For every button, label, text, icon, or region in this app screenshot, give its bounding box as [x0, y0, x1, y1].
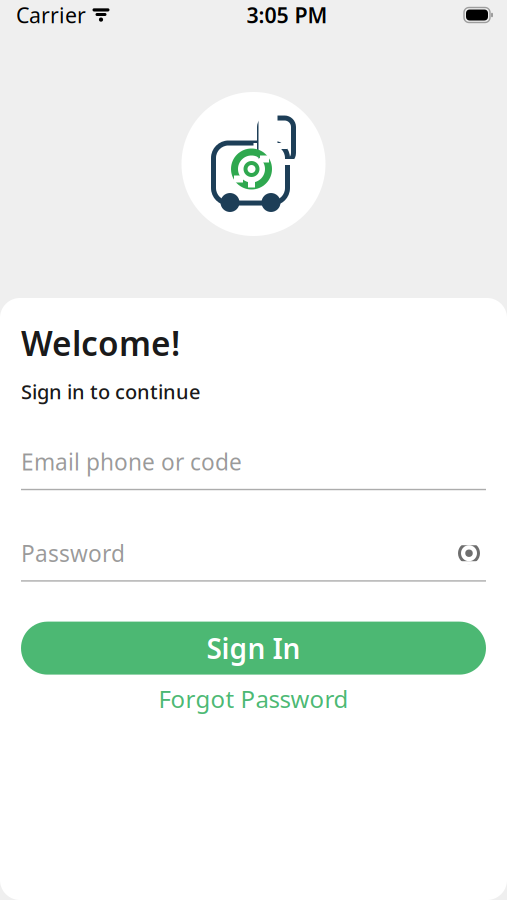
staticText: Welcome! — [21, 321, 180, 365]
staticText: Carrier — [16, 1, 86, 29]
staticText: Password — [21, 538, 125, 568]
staticText: Sign In — [206, 629, 300, 667]
button[interactable]: Show password — [452, 540, 486, 566]
button[interactable]: Sign In — [21, 622, 486, 675]
staticText: 3:05 PM — [246, 1, 327, 29]
staticText: Email phone or code — [21, 447, 242, 477]
button[interactable]: Forgot Password — [21, 682, 486, 716]
staticText: Forgot Password — [158, 683, 348, 715]
staticText: Sign in to continue — [21, 378, 200, 405]
